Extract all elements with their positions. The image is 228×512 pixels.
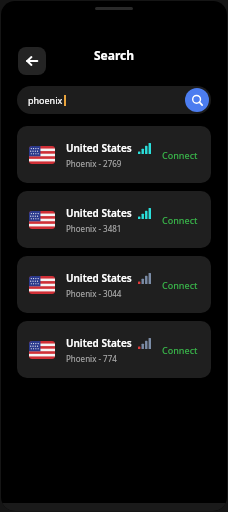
staticText: Search [94, 47, 135, 63]
staticText: United States [66, 271, 132, 285]
staticText: phoenix [28, 94, 63, 106]
button[interactable]: United States [17, 256, 211, 313]
staticText: United States [66, 206, 132, 220]
staticText: United States [66, 141, 132, 155]
button[interactable]: Search [185, 88, 209, 112]
staticText: Connect [162, 214, 198, 226]
button[interactable]: phoenix [17, 86, 211, 114]
button[interactable]: Connect [157, 143, 203, 167]
button[interactable]: Connect [157, 273, 203, 297]
staticText: Connect [162, 344, 198, 356]
button[interactable]: United States [17, 321, 211, 378]
button[interactable]: United States [17, 191, 211, 248]
staticText: Connect [162, 149, 198, 161]
button[interactable]: United States [17, 126, 211, 183]
button[interactable]: Back [18, 47, 46, 75]
staticText: Phoenix - 3481 [66, 223, 122, 234]
staticText: Phoenix - 3044 [66, 288, 122, 299]
button[interactable]: Connect [157, 338, 203, 362]
staticText: United States [66, 336, 132, 350]
staticText: Connect [162, 279, 198, 291]
staticText: Phoenix - 774 [66, 353, 117, 364]
staticText: Phoenix - 2769 [66, 158, 122, 169]
button[interactable]: Connect [157, 208, 203, 232]
